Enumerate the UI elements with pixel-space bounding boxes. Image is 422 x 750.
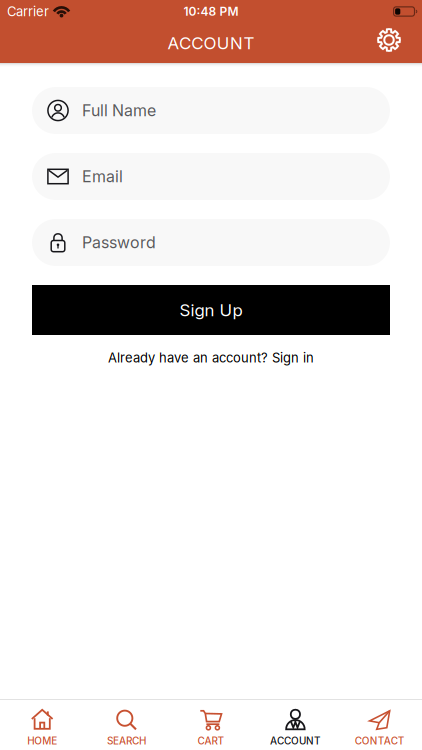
button[interactable]: ACCOUNT xyxy=(253,700,338,750)
staticText: CONTACT xyxy=(355,735,405,747)
button[interactable]: HOME xyxy=(0,700,84,750)
staticText: ACCOUNT xyxy=(168,33,254,53)
staticText: CART xyxy=(197,735,224,747)
staticText: Password xyxy=(82,233,156,252)
staticText: Already have an account? Sign in xyxy=(108,350,314,365)
staticText: Full Name xyxy=(82,101,156,120)
staticText: HOME xyxy=(27,735,57,747)
staticText: Carrier xyxy=(7,4,49,19)
staticText: Sign Up xyxy=(179,300,242,320)
button[interactable]: Password xyxy=(32,219,390,266)
button[interactable]: Already have an account? Sign in xyxy=(108,335,314,365)
button[interactable]: SEARCH xyxy=(84,700,169,750)
staticText: 10:48 PM xyxy=(183,4,238,19)
button[interactable]: Full Name xyxy=(32,87,390,134)
staticText: Email xyxy=(82,167,123,186)
button[interactable]: Settings xyxy=(377,31,422,55)
button[interactable]: CONTACT xyxy=(338,700,422,750)
button[interactable]: Sign Up xyxy=(32,285,390,335)
button[interactable]: CART xyxy=(169,700,253,750)
staticText: ACCOUNT xyxy=(270,735,321,747)
button[interactable]: Email xyxy=(32,153,390,200)
staticText: SEARCH xyxy=(107,735,146,747)
